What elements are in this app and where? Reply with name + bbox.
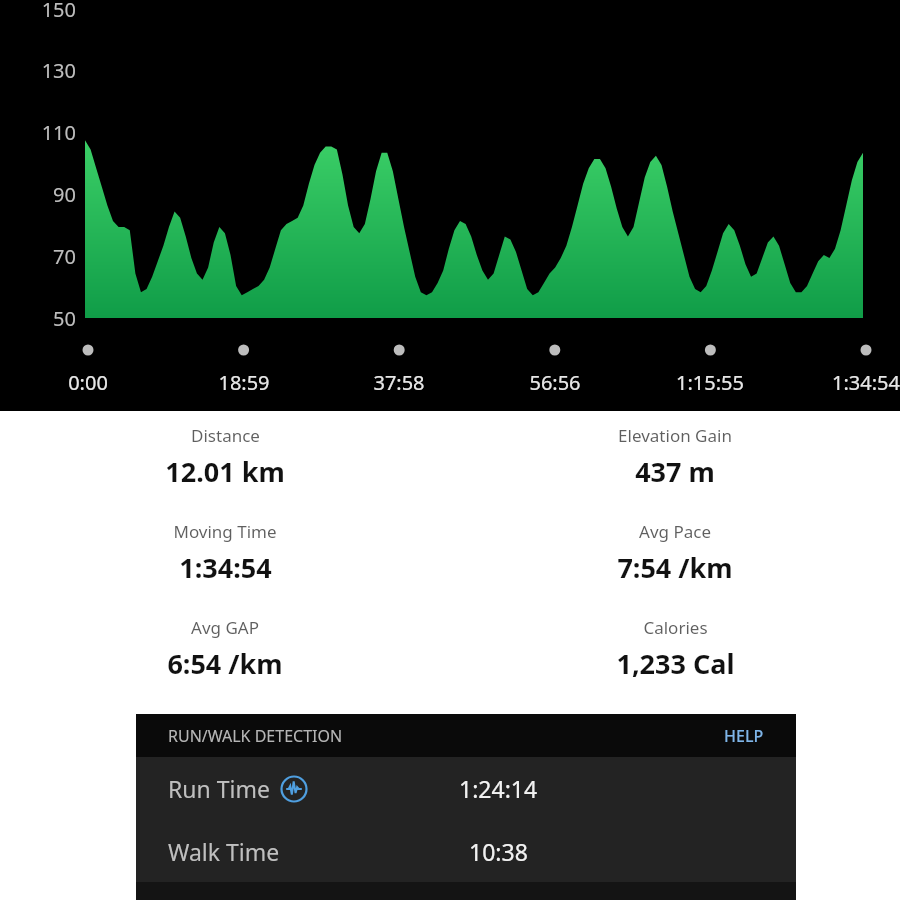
staticText: Elevation Gain [618,424,732,447]
staticText: Distance [191,424,260,447]
button[interactable]: Run Time [136,757,796,820]
staticText: 1,233 Cal [616,645,735,682]
staticText: 7:54 /km [617,549,733,586]
staticText: 1:15:55 [635,369,785,396]
staticText: Walk Time [168,836,280,867]
button[interactable]: Walk Time [136,820,796,882]
staticText: 18:59 [169,369,319,396]
staticText: HELP [724,725,764,747]
other: Run detection [280,775,308,803]
staticText: 10:38 [469,836,528,867]
button[interactable]: HELP [724,725,764,747]
staticText: 50 [0,305,76,332]
staticText: Moving Time [173,520,277,543]
staticText: 130 [0,57,76,84]
staticText: 90 [0,181,76,208]
staticText: Avg GAP [191,616,259,639]
staticText: Run Time [168,773,270,804]
staticText: 150 [0,0,76,23]
staticText: 56:56 [480,369,630,396]
staticText: RUN/WALK DETECTION [168,725,343,747]
staticText: 110 [0,119,76,146]
staticText: 1:34:54 [179,549,272,586]
staticText: 6:54 /km [167,645,283,682]
staticText: 1:24:14 [459,773,538,804]
staticText: 437 m [635,453,715,490]
staticText: 70 [0,243,76,270]
staticText: Calories [643,616,708,639]
staticText: 12.01 km [165,453,285,490]
staticText: 0:00 [13,369,163,396]
staticText: 37:58 [324,369,474,396]
staticText: 1:34:54 [791,369,900,396]
staticText: Avg Pace [639,520,711,543]
